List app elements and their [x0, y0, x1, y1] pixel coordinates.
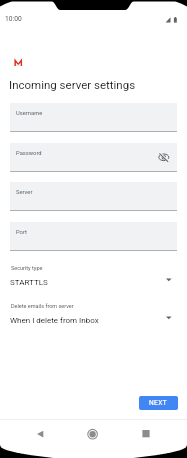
button[interactable]: Back [30, 424, 51, 445]
button[interactable]: Server [10, 182, 177, 211]
staticText: When I delete from Inbox [10, 316, 99, 325]
staticText: Security type [11, 265, 43, 271]
button[interactable]: Password [10, 143, 177, 172]
button[interactable]: Security type [0, 262, 187, 294]
staticText: Delete emails from server [11, 303, 74, 309]
staticText: NEXT [149, 399, 168, 407]
staticText: Incoming server settings [9, 78, 136, 91]
button[interactable]: Recent apps [136, 424, 157, 445]
staticText: STARTTLS [10, 278, 48, 287]
staticText: Port [16, 229, 27, 236]
button[interactable]: Home [82, 424, 103, 445]
button[interactable]: Show password [158, 152, 170, 163]
staticText: Username [16, 110, 43, 117]
button[interactable]: NEXT [139, 396, 178, 410]
staticText: Password [16, 150, 42, 157]
button[interactable]: Username [10, 103, 177, 132]
button[interactable]: Delete emails from server [0, 300, 187, 332]
button[interactable]: Port [10, 222, 177, 251]
staticText: Server [16, 189, 33, 196]
staticText: 10:00 [5, 15, 22, 23]
